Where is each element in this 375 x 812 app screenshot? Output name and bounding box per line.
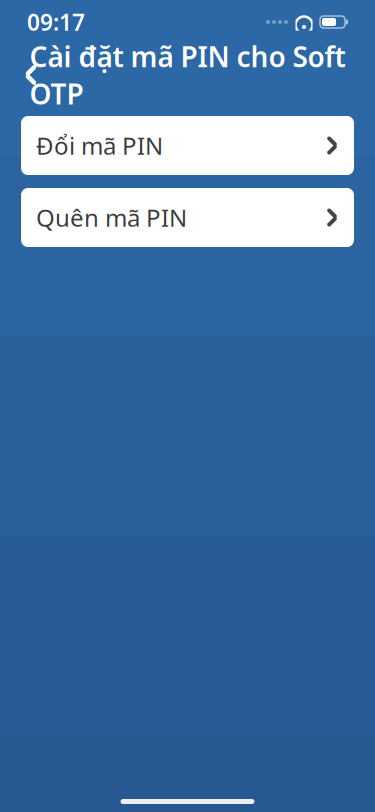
button[interactable]: Đổi mã PIN (21, 116, 354, 175)
button[interactable]: Quên mã PIN (21, 188, 354, 247)
staticText: Cài đặt mã PIN cho Soft OTP (29, 38, 345, 112)
staticText: 09:17 (27, 7, 85, 37)
staticText: Quên mã PIN (36, 202, 187, 233)
button[interactable]: Back (9, 53, 53, 97)
staticText: Đổi mã PIN (36, 130, 163, 161)
